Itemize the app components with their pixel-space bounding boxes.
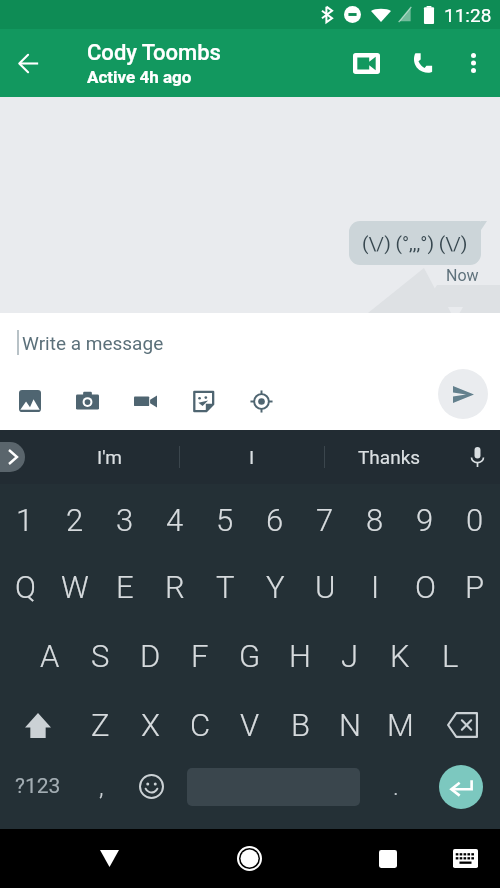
button[interactable]: Switch keyboard <box>440 829 490 888</box>
button[interactable]: Sticker <box>181 381 226 421</box>
staticText: Q <box>15 569 36 605</box>
button[interactable]: 3 <box>100 484 150 556</box>
staticText: 3 <box>116 502 134 538</box>
button[interactable]: Back <box>79 829 139 888</box>
button[interactable]: X <box>125 689 175 761</box>
button[interactable]: Voice input <box>454 430 500 484</box>
staticText: . <box>393 773 399 801</box>
staticText: H <box>289 638 311 674</box>
button[interactable]: O <box>400 551 450 623</box>
staticText: V <box>240 707 260 743</box>
button[interactable]: T <box>200 551 250 623</box>
button[interactable]: K <box>375 620 425 692</box>
button[interactable]: I <box>180 430 324 484</box>
staticText: 9 <box>416 502 434 538</box>
button[interactable]: 5 <box>200 484 250 556</box>
button[interactable]: R <box>150 551 200 623</box>
button[interactable]: 6 <box>250 484 300 556</box>
button[interactable]: Video call <box>339 29 393 97</box>
staticText: 7 <box>316 502 334 538</box>
button[interactable]: Call <box>393 29 451 97</box>
staticText: Active 4h ago <box>87 67 192 87</box>
staticText: I'm <box>97 446 122 468</box>
button[interactable]: F <box>175 620 225 692</box>
staticText: W <box>61 569 89 605</box>
button[interactable]: 9 <box>400 484 450 556</box>
button[interactable]: Recent apps <box>358 829 418 888</box>
staticText: O <box>415 569 436 605</box>
button[interactable]: A <box>25 620 75 692</box>
button[interactable]: Expand suggestions <box>0 442 25 472</box>
staticText: G <box>239 638 261 674</box>
staticText: 2 <box>66 502 84 538</box>
button[interactable]: Gallery <box>7 381 52 421</box>
staticText: 8 <box>366 502 384 538</box>
button[interactable]: E <box>100 551 150 623</box>
button[interactable]: M <box>375 689 425 761</box>
button[interactable]: Send <box>438 369 488 419</box>
button[interactable]: W <box>50 551 100 623</box>
button[interactable]: P <box>450 551 500 623</box>
staticText: P <box>465 569 485 605</box>
button[interactable]: I <box>350 551 400 623</box>
button[interactable]: Emoji <box>126 752 176 821</box>
button[interactable]: Q <box>0 551 50 623</box>
button[interactable]: H <box>275 620 325 692</box>
staticText: R <box>165 569 185 605</box>
staticText: M <box>387 707 414 743</box>
button[interactable]: N <box>325 689 375 761</box>
staticText: T <box>216 569 235 605</box>
button[interactable]: 4 <box>150 484 200 556</box>
button[interactable]: V <box>225 689 275 761</box>
staticText: Now <box>446 266 479 285</box>
button[interactable]: Video <box>123 381 168 421</box>
button[interactable]: 0 <box>450 484 500 556</box>
button[interactable]: Camera <box>65 381 110 421</box>
button[interactable]: Shift <box>0 689 75 761</box>
button[interactable]: 1 <box>0 484 50 556</box>
button[interactable]: Thanks <box>325 430 454 484</box>
staticText: C <box>190 707 211 743</box>
button[interactable]: U <box>300 551 350 623</box>
staticText: S <box>91 638 110 674</box>
button[interactable]: . <box>371 752 421 821</box>
button[interactable]: Location <box>239 381 284 421</box>
button[interactable]: 7 <box>300 484 350 556</box>
button[interactable]: D <box>125 620 175 692</box>
staticText: X <box>141 707 160 743</box>
button[interactable]: (\/) (°,,,°) (\/) <box>349 221 481 265</box>
button[interactable]: More options <box>451 29 495 97</box>
staticText: 6 <box>266 502 284 538</box>
button[interactable]: Home <box>219 829 279 888</box>
button[interactable]: I'm <box>40 430 179 484</box>
button[interactable]: G <box>225 620 275 692</box>
button[interactable]: Back <box>0 29 56 97</box>
staticText: 1 <box>16 502 34 538</box>
button[interactable]: 2 <box>50 484 100 556</box>
staticText: I <box>249 446 255 468</box>
button[interactable]: Backspace <box>425 689 500 761</box>
staticText: L <box>442 638 459 674</box>
staticText: N <box>339 707 362 743</box>
button[interactable]: B <box>275 689 325 761</box>
button[interactable]: , <box>76 752 126 821</box>
staticText: 4 <box>166 502 184 538</box>
button[interactable]: J <box>325 620 375 692</box>
staticText: U <box>315 569 336 605</box>
staticText: , <box>99 773 104 801</box>
button[interactable]: 8 <box>350 484 400 556</box>
button[interactable]: Enter <box>439 765 483 809</box>
button[interactable]: Y <box>250 551 300 623</box>
staticText: Thanks <box>358 446 421 468</box>
button[interactable]: Z <box>75 689 125 761</box>
button[interactable]: ?123 <box>0 752 76 821</box>
button[interactable]: L <box>425 620 475 692</box>
button[interactable]: S <box>75 620 125 692</box>
staticText: 0 <box>466 502 484 538</box>
button[interactable]: C <box>175 689 225 761</box>
staticText: I <box>371 569 380 605</box>
staticText: 5 <box>216 502 234 538</box>
staticText: Cody Toombs <box>87 40 221 66</box>
staticText: E <box>116 569 134 605</box>
